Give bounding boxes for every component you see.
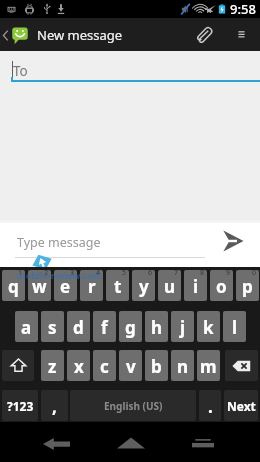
button[interactable]: y [132,270,155,301]
staticText: 8 [200,270,205,278]
staticText: English (US) [104,399,163,413]
staticText: 1 [18,270,23,278]
button[interactable]: i [184,270,207,301]
button[interactable]: ?123 [2,390,38,421]
button[interactable]: z [41,350,64,381]
staticText: f [101,316,108,339]
staticText: 3 [70,270,75,278]
staticText: l [232,316,238,339]
button[interactable]: f [93,311,116,342]
staticText: q [8,275,19,298]
staticText: 9 [226,270,231,278]
staticText: u [164,275,176,298]
button[interactable]: v [119,350,142,381]
button[interactable]: t [106,270,129,301]
button[interactable]: Shift [2,350,34,381]
button[interactable]: b [145,350,168,381]
button[interactable]: English (US) [70,390,196,421]
staticText: m [200,355,217,378]
staticText: i [193,275,199,298]
button[interactable]: , [41,390,68,421]
button[interactable]: u [158,270,181,301]
button[interactable]: m [197,350,220,381]
button[interactable]: Attach [184,18,222,51]
staticText: d [73,316,84,339]
button[interactable]: a [15,311,38,342]
button[interactable]: q [2,270,25,301]
button[interactable]: . [199,390,221,421]
staticText: t [114,275,122,298]
button[interactable]: Home [106,422,156,462]
button[interactable]: w [28,270,51,301]
staticText: c [100,355,109,378]
button[interactable]: l [223,311,246,342]
staticText: j [180,316,186,339]
button[interactable]: h [145,311,168,342]
staticText: a [21,316,32,339]
staticText: ?123 [7,398,34,414]
button[interactable]: g [119,311,142,342]
staticText: v [126,355,136,378]
staticText: . [208,395,213,418]
button[interactable]: New message [0,25,127,45]
staticText: 7 [174,270,179,278]
staticText: g [125,316,136,339]
staticText: Next [227,398,256,414]
staticText: New message [37,26,123,44]
button[interactable]: k [197,311,220,342]
button[interactable]: Back [31,422,81,462]
staticText: To [13,62,28,80]
button[interactable]: e [54,270,77,301]
staticText: 9:58 [230,0,256,18]
staticText: s [48,316,57,339]
button[interactable]: n [171,350,194,381]
staticText: 2 [44,270,49,278]
button[interactable]: More options [222,18,260,51]
staticText: w [32,275,47,298]
button[interactable]: Next [224,390,258,421]
staticText: z [48,355,57,378]
staticText: , [52,395,57,418]
staticText: x [74,355,84,378]
staticText: 5 [122,270,127,278]
button[interactable]: d [67,311,90,342]
button[interactable]: Recents [178,422,228,462]
staticText: mobile-review.com [17,269,102,281]
button[interactable]: p [236,270,259,301]
button[interactable]: s [41,311,64,342]
staticText: p [242,275,253,298]
button[interactable]: x [67,350,90,381]
staticText: y [139,275,149,298]
staticText: 4 [96,270,101,278]
staticText: o [216,275,227,298]
staticText: e [60,275,71,298]
staticText: b [151,355,162,378]
button[interactable]: r [80,270,103,301]
staticText: 0 [252,270,257,278]
staticText: Type message [17,234,101,251]
staticText: r [88,275,96,298]
button[interactable]: Send [220,227,246,255]
staticText: h [151,316,163,339]
button[interactable]: Backspace [225,350,258,381]
button[interactable]: o [210,270,233,301]
button[interactable]: j [171,311,194,342]
staticText: k [203,316,214,339]
staticText: 6 [148,270,153,278]
staticText: n [177,355,189,378]
button[interactable]: c [93,350,116,381]
